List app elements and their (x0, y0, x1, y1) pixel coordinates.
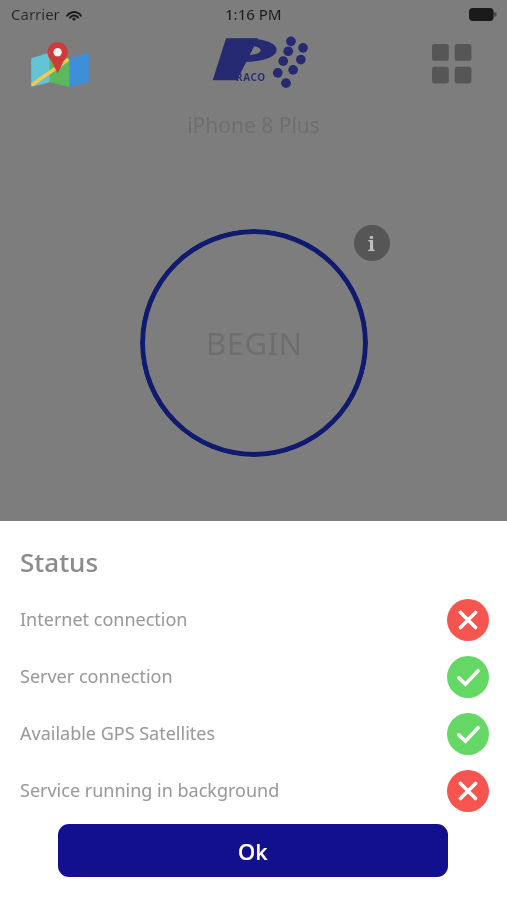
staticText: Internet connection (20, 607, 188, 632)
staticText: Status (20, 544, 99, 579)
button[interactable]: Information (354, 225, 390, 261)
button[interactable]: Map (30, 40, 90, 88)
button[interactable]: Ok (58, 824, 448, 877)
staticText: 1:16 PM (225, 4, 282, 24)
staticText: i (368, 230, 376, 257)
staticText: Available GPS Satellites (20, 721, 216, 746)
button[interactable]: Internet connection (0, 591, 507, 648)
button[interactable]: Server connection (0, 648, 507, 705)
button[interactable]: Service running in background (0, 762, 507, 819)
staticText: Ok (238, 836, 268, 866)
button[interactable]: Available GPS Satellites (0, 705, 507, 762)
staticText: BEGIN (206, 322, 303, 364)
staticText: Carrier (11, 4, 60, 24)
staticText: Server connection (20, 664, 173, 689)
button[interactable]: Menu (432, 44, 474, 86)
button[interactable]: BEGIN (140, 229, 368, 457)
staticText: RACO (236, 70, 266, 84)
staticText: Service running in background (20, 778, 280, 803)
